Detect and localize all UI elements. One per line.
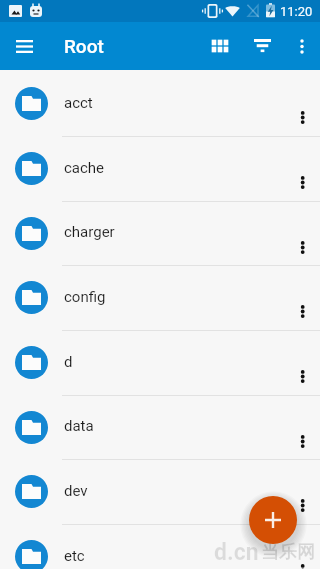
button[interactable]: Item options (286, 554, 318, 569)
staticText: data (64, 417, 94, 435)
staticText: cache (64, 159, 105, 177)
staticText: Root (64, 35, 104, 57)
staticText: dev (64, 482, 88, 500)
staticText: etc (64, 547, 85, 565)
button[interactable]: Item options (286, 425, 318, 457)
button[interactable]: Item options (286, 489, 318, 521)
staticText: acct (64, 94, 93, 112)
staticText: charger (64, 223, 115, 241)
button[interactable]: Item options (286, 295, 318, 327)
button[interactable]: d (0, 331, 320, 396)
button[interactable]: charger (0, 202, 320, 266)
staticText: config (64, 288, 106, 306)
button[interactable]: Grid view (199, 25, 241, 67)
button[interactable]: config (0, 266, 320, 331)
button[interactable]: acct (0, 72, 320, 137)
button[interactable]: Item options (286, 166, 318, 198)
button[interactable]: dev (0, 460, 320, 525)
button[interactable]: More options (283, 28, 320, 65)
button[interactable]: Sort (241, 25, 283, 67)
button[interactable]: Item options (286, 101, 318, 133)
button[interactable]: Item options (286, 231, 318, 263)
button[interactable]: etc (0, 525, 320, 569)
button[interactable]: Add (249, 496, 297, 544)
staticText: 当乐网 (261, 541, 315, 564)
button[interactable]: data (0, 396, 320, 460)
staticText: d.cn (214, 539, 259, 566)
staticText: 11:20 (280, 4, 313, 19)
staticText: d (64, 353, 73, 371)
button[interactable]: Open navigation drawer (0, 22, 48, 70)
button[interactable]: Item options (286, 360, 318, 392)
button[interactable]: cache (0, 137, 320, 202)
